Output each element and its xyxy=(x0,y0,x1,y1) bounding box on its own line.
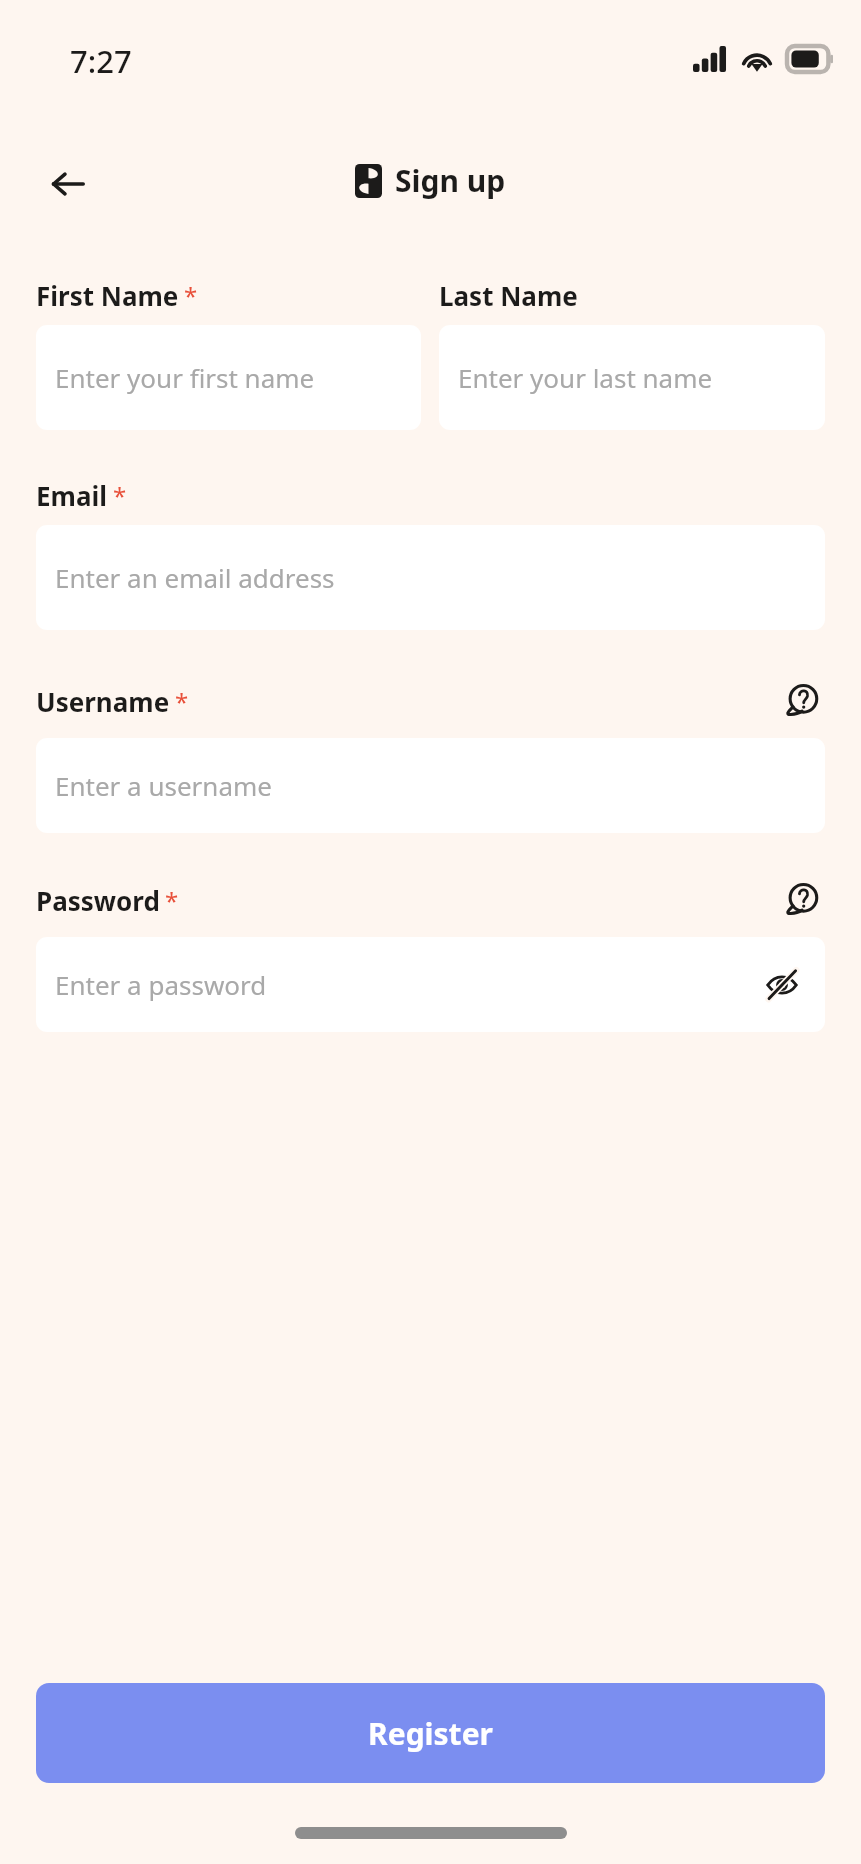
button[interactable]: Enter your first name xyxy=(36,325,421,430)
button[interactable]: Show password xyxy=(758,961,806,1009)
staticText: Last Name xyxy=(439,278,578,313)
button[interactable]: Enter a password xyxy=(36,937,825,1032)
staticText: * xyxy=(184,279,198,312)
button[interactable]: Register xyxy=(36,1683,825,1783)
staticText: Enter your last name xyxy=(458,360,713,395)
staticText: 7:27 xyxy=(70,40,132,82)
staticText: * xyxy=(175,685,189,718)
staticText: Enter a password xyxy=(55,967,267,1002)
staticText: Username xyxy=(36,684,170,719)
button[interactable]: Enter your last name xyxy=(439,325,825,430)
staticText: Register xyxy=(368,1713,493,1754)
button[interactable]: Enter a username xyxy=(36,738,825,833)
button[interactable]: Back xyxy=(36,152,100,216)
staticText: Enter a username xyxy=(55,768,272,803)
button[interactable]: Enter an email address xyxy=(36,525,825,630)
button[interactable]: Help about Username xyxy=(779,678,825,724)
staticText: Email xyxy=(36,478,108,513)
staticText: * xyxy=(113,479,127,512)
staticText: Password xyxy=(36,883,160,918)
staticText: Enter your first name xyxy=(55,360,315,395)
staticText: Sign up xyxy=(395,160,506,201)
staticText: First Name xyxy=(36,278,179,313)
staticText: Enter an email address xyxy=(55,560,335,595)
staticText: * xyxy=(165,884,179,917)
button[interactable]: Help about Password xyxy=(779,877,825,923)
